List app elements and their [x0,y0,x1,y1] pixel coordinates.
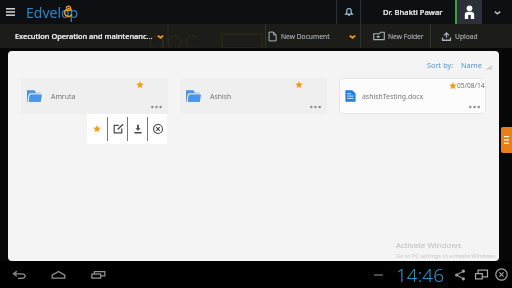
button[interactable]: Home [46,261,70,288]
staticText: Upload [455,32,478,41]
button[interactable]: Profile [457,0,482,24]
button[interactable]: Sort by: [427,59,492,71]
staticText: New Document [281,32,330,41]
button[interactable]: Open side panel [501,127,512,153]
button[interactable]: Recents [86,261,110,288]
button[interactable]: Screenshot [471,261,491,288]
button[interactable]: Menu [0,0,20,24]
button[interactable]: New Folder [361,24,434,48]
staticText: Execution Operation and maintenanc... [15,31,153,41]
button[interactable]: Edit [108,114,127,144]
button[interactable]: Favorite [87,114,107,144]
button[interactable]: More options [467,104,481,110]
button[interactable]: Download [128,114,147,144]
staticText: Dr. Bhakti Pawar [383,7,443,17]
button[interactable]: More options [308,104,322,110]
button[interactable]: Amruta [21,78,168,114]
button[interactable]: Ashish [180,78,327,114]
button[interactable]: ashishTesting.docx [339,78,486,114]
button[interactable]: New Document [266,24,359,48]
button[interactable]: More options [149,104,163,110]
button[interactable]: Notifications [337,0,361,24]
button[interactable]: Account menu [482,0,512,24]
staticText: Ashish [210,92,232,101]
button[interactable]: Close [491,261,512,288]
staticText: 14:46 [396,262,445,288]
staticText: Edvelop [26,3,79,22]
button[interactable]: Back [7,261,31,288]
staticText: Go to PC settings to activate Windows. [396,252,497,260]
button[interactable]: Upload [431,24,488,48]
staticText: Sort by: [427,60,454,70]
staticText: Name [461,60,482,70]
button[interactable]: Delete [148,114,167,144]
button[interactable]: Share [450,261,470,288]
staticText: New Folder [388,32,424,41]
staticText: Activate Windows [396,240,462,251]
staticText: 05/08/14 [457,81,485,90]
staticText: Amruta [51,92,76,101]
button[interactable]: Execution Operation and maintenanc... [0,24,165,48]
staticText: ashishTesting.docx [362,92,424,101]
